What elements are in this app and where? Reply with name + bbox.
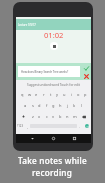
button[interactable]: Shift: [18, 111, 29, 122]
button[interactable]: q: [19, 89, 26, 100]
staticText: l: [81, 103, 83, 108]
staticText: x: [38, 114, 41, 119]
button[interactable]: Lecture 1/9/17: [16, 19, 91, 30]
staticText: g: [52, 103, 55, 108]
button[interactable]: m: [71, 111, 78, 122]
staticText: u: [63, 92, 66, 97]
button[interactable]: i: [68, 89, 75, 100]
staticText: ,: [27, 124, 28, 129]
staticText: c: [46, 114, 48, 119]
staticText: y: [56, 92, 59, 97]
staticText: s: [32, 103, 34, 108]
button[interactable]: g: [50, 100, 57, 111]
button[interactable]: l: [78, 100, 85, 111]
button[interactable]: h: [57, 100, 64, 111]
button[interactable]: x: [36, 111, 43, 122]
button[interactable]: p: [82, 89, 89, 100]
staticText: Take notes while: [18, 155, 87, 166]
button[interactable]: Back: [28, 134, 37, 143]
button[interactable]: w: [26, 89, 33, 100]
staticText: recording: [32, 167, 73, 178]
button[interactable]: How does Binary Search Tree works?: [18, 66, 80, 77]
staticText: b: [59, 114, 62, 119]
staticText: z: [32, 114, 34, 119]
button[interactable]: ?123: [16, 122, 25, 130]
button[interactable]: k: [71, 100, 78, 111]
button[interactable]: Period: [77, 122, 82, 130]
staticText: w: [28, 92, 32, 97]
button[interactable]: o: [75, 89, 82, 100]
button[interactable]: Cancel note: [82, 72, 90, 80]
staticText: a: [24, 103, 27, 108]
staticText: r: [43, 92, 45, 97]
button[interactable]: r: [40, 89, 47, 100]
button[interactable]: z: [29, 111, 36, 122]
button[interactable]: s: [29, 100, 36, 111]
staticText: 01:02: [44, 30, 64, 40]
button[interactable]: c: [43, 111, 50, 122]
button[interactable]: v: [50, 111, 57, 122]
button[interactable]: e: [33, 89, 40, 100]
button[interactable]: Stop recording: [50, 42, 58, 50]
staticText: h: [59, 103, 62, 108]
staticText: Suggest undoed word Touch for edit: [27, 83, 80, 87]
button[interactable]: d: [36, 100, 43, 111]
staticText: n: [66, 114, 69, 119]
button[interactable]: n: [64, 111, 71, 122]
button[interactable]: y: [54, 89, 61, 100]
button[interactable]: a: [22, 100, 29, 111]
button[interactable]: Recent apps: [70, 134, 79, 143]
button[interactable]: b: [57, 111, 64, 122]
button[interactable]: Enter: [85, 124, 89, 128]
staticText: o: [77, 92, 80, 97]
staticText: v: [52, 114, 55, 119]
staticText: i: [71, 92, 73, 97]
staticText: p: [84, 92, 87, 97]
staticText: t: [50, 92, 52, 97]
button[interactable]: u: [61, 89, 68, 100]
staticText: k: [73, 103, 76, 108]
button[interactable]: Comma: [25, 122, 30, 130]
staticText: How does Binary Search Tree works?: [21, 70, 69, 74]
staticText: Lecture 1/9/17: [18, 23, 36, 27]
button[interactable]: j: [64, 100, 71, 111]
button[interactable]: Backspace: [78, 111, 89, 122]
staticText: d: [38, 103, 41, 108]
staticText: j: [67, 103, 69, 108]
staticText: e: [35, 92, 38, 97]
staticText: ?123: [17, 124, 24, 128]
staticText: q: [21, 92, 24, 97]
button[interactable]: t: [47, 89, 54, 100]
staticText: m: [73, 114, 77, 119]
staticText: f: [46, 103, 48, 108]
staticText: .: [79, 124, 80, 129]
button[interactable]: Home: [49, 134, 58, 143]
button[interactable]: f: [43, 100, 50, 111]
button[interactable]: Save note: [82, 64, 90, 72]
